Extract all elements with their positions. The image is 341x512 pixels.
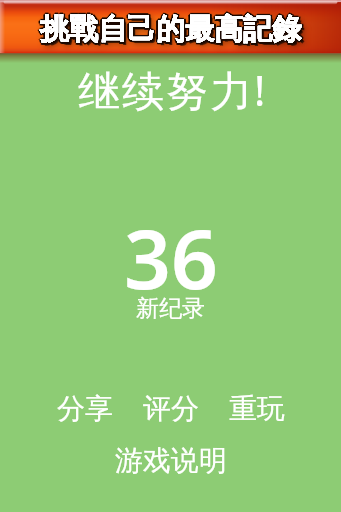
button[interactable]: 分享	[51, 383, 119, 434]
staticText: 挑戰自己的最高記錄	[40, 13, 301, 50]
staticText: 挑戰自己的最高記錄	[42, 13, 303, 50]
staticText: 挑戰自己的最高記錄	[40, 11, 301, 48]
staticText: 挑戰自己的最高記錄	[40, 11, 301, 48]
staticText: 继续努力!	[78, 61, 268, 118]
staticText: 分享	[57, 391, 113, 426]
staticText: 挑戰自己的最高記錄	[40, 11, 301, 48]
staticText: 重玩	[229, 391, 285, 426]
staticText: 挑戰自己的最高記錄	[42, 11, 303, 48]
staticText: 挑戰自己的最高記錄	[40, 9, 301, 46]
button[interactable]: 游戏说明	[109, 435, 233, 486]
staticText: 挑戰自己的最高記錄	[42, 10, 303, 47]
staticText: 挑戰自己的最高記錄	[39, 13, 300, 50]
button[interactable]: 重玩	[223, 383, 291, 434]
staticText: 游戏说明	[115, 443, 227, 478]
staticText: 挑戰自己的最高記錄	[43, 14, 304, 51]
staticText: 新纪录	[136, 294, 205, 323]
staticText: 挑戰自己的最高記錄	[40, 11, 301, 48]
staticText: 挑戰自己的最高記錄	[38, 11, 299, 48]
staticText: 挑戰自己的最高記錄	[40, 11, 301, 48]
staticText: 挑戰自己的最高記錄	[39, 10, 300, 47]
staticText: 评分	[143, 391, 199, 426]
button[interactable]: 评分	[137, 383, 205, 434]
staticText: 36	[124, 201, 218, 313]
